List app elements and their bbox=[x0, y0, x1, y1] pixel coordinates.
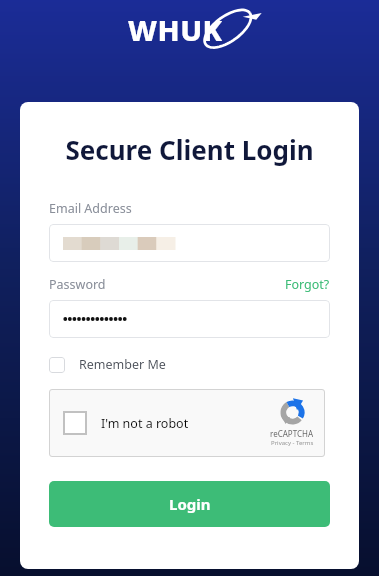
button[interactable] bbox=[49, 300, 330, 338]
button[interactable]: Login bbox=[49, 481, 330, 527]
staticText: reCAPTCHA bbox=[270, 428, 314, 439]
staticText: WHUK bbox=[128, 10, 223, 49]
staticText: Privacy - Terms bbox=[271, 439, 314, 447]
staticText: Secure Client Login bbox=[20, 132, 359, 167]
staticText: Forgot? bbox=[285, 276, 330, 293]
button[interactable] bbox=[49, 224, 330, 262]
staticText: Email Address bbox=[49, 200, 132, 217]
other: WHUK logo bbox=[127, 9, 253, 51]
staticText: Password bbox=[49, 276, 106, 293]
staticText: Login bbox=[169, 494, 211, 514]
staticText: I'm not a robot bbox=[101, 415, 189, 432]
staticText: Remember Me bbox=[79, 356, 166, 373]
button[interactable]: I'm not a robot bbox=[49, 389, 325, 457]
button[interactable]: Forgot? bbox=[285, 276, 330, 293]
button[interactable]: Remember Me bbox=[49, 354, 166, 375]
